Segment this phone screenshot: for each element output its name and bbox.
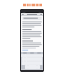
button[interactable] (21, 16, 43, 52)
button[interactable] (0, 0, 64, 9)
button[interactable]: Document toolbar (21, 13, 43, 16)
button[interactable]: Suggestions (21, 52, 43, 54)
